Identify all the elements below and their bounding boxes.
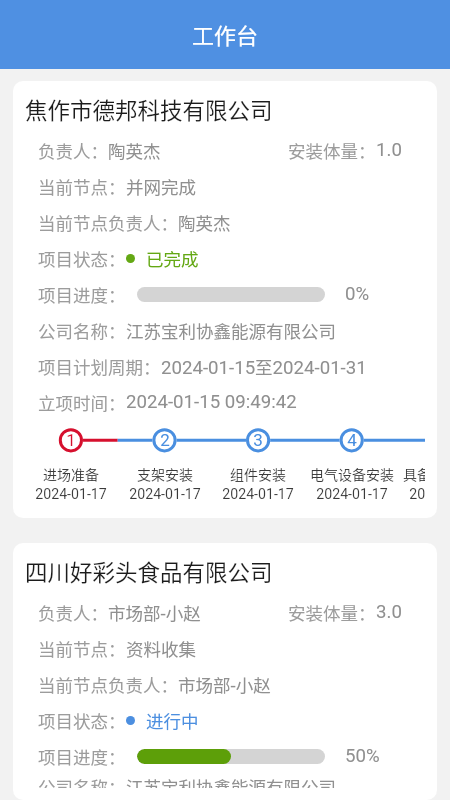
button[interactable]: 工作台	[0, 0, 450, 69]
staticText: 陶英杰	[108, 138, 161, 163]
staticText: 进行中	[146, 708, 199, 733]
staticText: 2024-01-17	[409, 486, 425, 503]
staticText: 江苏宝利协鑫能源有限公司	[126, 774, 336, 788]
staticText: 已完成	[146, 246, 199, 271]
staticText: 公司名称：	[38, 774, 126, 788]
staticText: 立项时间：	[38, 390, 126, 415]
staticText: 当前节点：	[38, 636, 126, 661]
staticText: 2	[160, 430, 170, 450]
staticText: 当前节点负责人：	[38, 210, 178, 235]
button[interactable]: 四川好彩头食品有限公司	[13, 543, 437, 800]
staticText: 3.0	[376, 601, 402, 623]
staticText: 市场部-小赵	[178, 672, 271, 697]
staticText: 2024-01-15至2024-01-31	[161, 354, 367, 379]
staticText: 项目进度：	[38, 744, 126, 769]
staticText: 2024-01-17	[222, 486, 294, 503]
staticText: 安装体量：	[288, 600, 376, 625]
staticText: 当前节点：	[38, 174, 126, 199]
staticText: 电气设备安装	[310, 464, 394, 484]
staticText: 负责人：	[38, 600, 108, 625]
staticText: 2024-01-17	[129, 486, 201, 503]
staticText: 2024-01-17	[35, 486, 107, 503]
staticText: 资料收集	[126, 636, 196, 661]
staticText: 江苏宝利协鑫能源有限公司	[126, 318, 336, 343]
staticText: 工作台	[192, 18, 259, 50]
staticText: 陶英杰	[178, 210, 231, 235]
staticText: 50%	[345, 745, 380, 767]
staticText: 组件安装	[230, 464, 286, 484]
staticText: 4	[347, 430, 357, 450]
staticText: 并网完成	[126, 174, 196, 199]
staticText: 项目状态：	[38, 246, 126, 271]
staticText: 进场准备	[43, 464, 99, 484]
staticText: 焦作市德邦科技有限公司	[25, 93, 273, 126]
staticText: 1.0	[376, 139, 402, 161]
button[interactable]: 焦作市德邦科技有限公司	[13, 81, 437, 518]
staticText: 3	[253, 430, 263, 450]
staticText: 1	[66, 430, 76, 450]
staticText: 公司名称：	[38, 318, 126, 343]
staticText: 负责人：	[38, 138, 108, 163]
staticText: 具备并网条件	[403, 464, 425, 484]
staticText: 2024-01-17	[316, 486, 388, 503]
staticText: 2024-01-15 09:49:42	[126, 391, 297, 413]
staticText: 支架安装	[137, 464, 193, 484]
staticText: 0%	[345, 283, 370, 305]
staticText: 四川好彩头食品有限公司	[25, 555, 273, 588]
staticText: 市场部-小赵	[108, 600, 201, 625]
staticText: 项目状态：	[38, 708, 126, 733]
staticText: 当前节点负责人：	[38, 672, 178, 697]
staticText: 项目计划周期：	[38, 354, 161, 379]
staticText: 安装体量：	[288, 138, 376, 163]
staticText: 项目进度：	[38, 282, 126, 307]
